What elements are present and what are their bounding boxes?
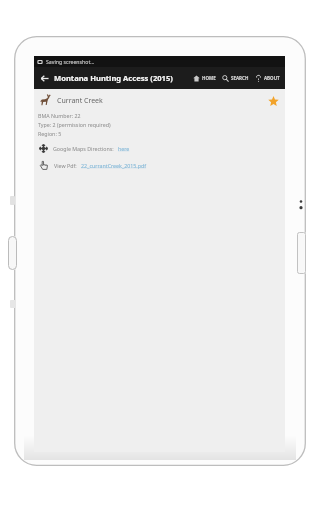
- button[interactable]: SEARCH: [219, 67, 252, 89]
- button[interactable]: HOME: [190, 67, 219, 89]
- staticText: Saving screenshot…: [46, 58, 95, 65]
- staticText: Montana Hunting Access (2015): [54, 73, 173, 83]
- staticText: 22_currantCreek_2015.pdf: [81, 162, 147, 169]
- staticText: ABOUT: [264, 75, 280, 81]
- staticText: Currant Creek: [57, 96, 103, 106]
- staticText: View Pdf:: [54, 162, 77, 169]
- staticText: SEARCH: [231, 75, 249, 81]
- button[interactable]: Google Maps Directions:: [34, 141, 285, 155]
- staticText: Type: 2 (permission required): [38, 121, 111, 128]
- button[interactable]: Favorite: [265, 93, 281, 109]
- button[interactable]: Currant Creek: [34, 89, 285, 112]
- button[interactable]: Back: [34, 67, 54, 89]
- staticText: Google Maps Directions:: [53, 145, 114, 152]
- button[interactable]: ABOUT: [252, 67, 283, 89]
- staticText: HOME: [202, 75, 216, 81]
- staticText: Region: 5: [38, 130, 62, 137]
- staticText: here: [118, 145, 130, 152]
- staticText: BMA Number: 22: [38, 112, 81, 119]
- button[interactable]: View Pdf:: [34, 157, 285, 173]
